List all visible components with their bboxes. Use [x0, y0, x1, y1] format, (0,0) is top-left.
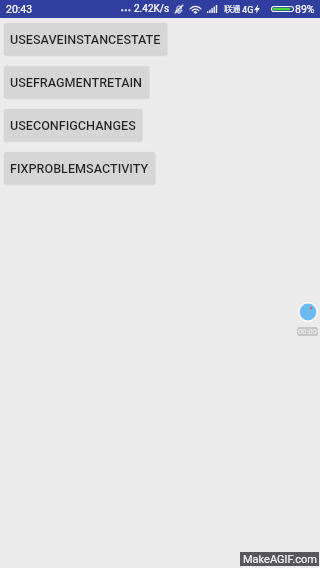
staticText: 联通 [224, 4, 242, 15]
staticText: 4G [242, 4, 254, 15]
button[interactable]: USESAVEINSTANCESTATE [4, 23, 167, 55]
button[interactable]: FIXPROBLEMSACTIVITY [4, 152, 155, 184]
button[interactable]: USECONFIGCHANGES [4, 109, 142, 141]
staticText: USECONFIGCHANGES [10, 118, 136, 133]
staticText: FIXPROBLEMSACTIVITY [10, 161, 149, 176]
button[interactable]: Screen recorder [297, 301, 319, 323]
staticText: 00:00 [298, 327, 317, 336]
staticText: 89% [295, 3, 315, 15]
staticText: USESAVEINSTANCESTATE [10, 32, 161, 47]
staticText: 2.42K/s [134, 3, 170, 15]
staticText: MakeAGIF.com [243, 553, 317, 566]
staticText: USEFRAGMENTRETAIN [10, 75, 143, 90]
staticText: 20:43 [6, 3, 33, 15]
button[interactable]: USEFRAGMENTRETAIN [4, 66, 149, 98]
